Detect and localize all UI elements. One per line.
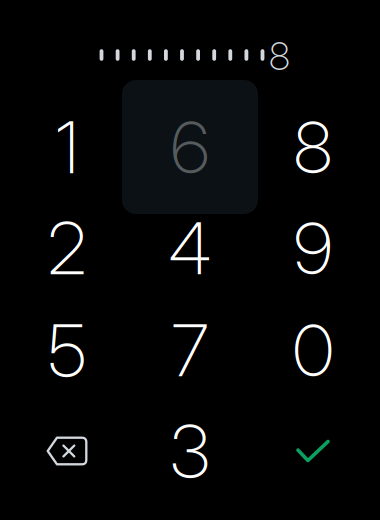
button[interactable]: 5 (0, 283, 135, 417)
button[interactable]: 1 (0, 80, 135, 214)
button[interactable]: 0 (245, 283, 380, 417)
button[interactable]: 3 (122, 384, 258, 518)
button[interactable]: 8 (245, 80, 380, 214)
staticText: 8 (269, 33, 290, 79)
button[interactable]: 9 (245, 181, 380, 315)
staticText: 3 (170, 407, 210, 494)
staticText: 4 (168, 204, 211, 291)
button[interactable]: 4 (122, 181, 258, 315)
staticText: 2 (47, 204, 86, 291)
staticText: 7 (171, 306, 208, 393)
button[interactable]: 6 (122, 80, 258, 214)
staticText: 9 (293, 204, 332, 291)
button[interactable]: 2 (0, 181, 135, 315)
staticText: 1 (55, 103, 78, 190)
button[interactable]: Confirm (245, 384, 380, 518)
button[interactable]: 7 (122, 283, 258, 417)
button[interactable]: Delete (0, 384, 135, 518)
staticText: 5 (48, 306, 86, 393)
staticText: 8 (293, 103, 332, 190)
staticText: 6 (170, 103, 209, 190)
staticText: 0 (292, 306, 333, 393)
